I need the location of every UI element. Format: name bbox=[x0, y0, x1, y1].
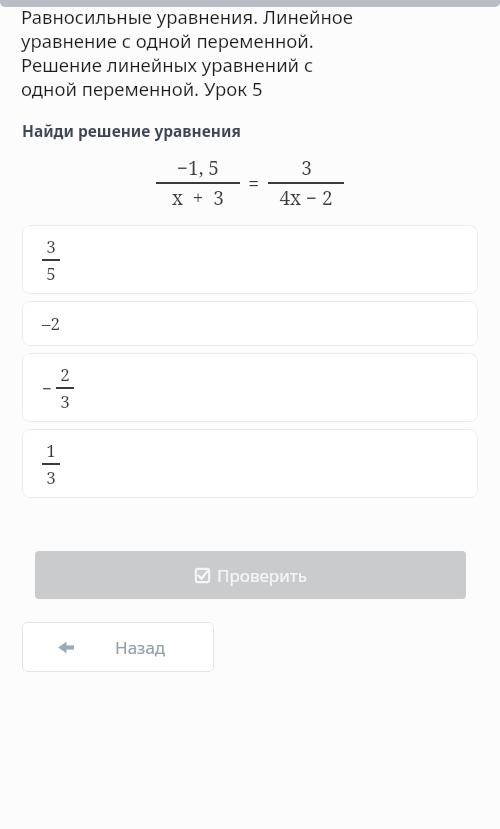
staticText: 3 bbox=[46, 466, 56, 489]
button[interactable]: Назад bbox=[22, 622, 214, 672]
staticText: 5 bbox=[46, 262, 56, 285]
staticText: = bbox=[248, 170, 260, 197]
other: Назад bbox=[56, 637, 77, 658]
staticText: x + 3 bbox=[172, 185, 224, 211]
button[interactable]: –2 bbox=[22, 301, 478, 346]
button[interactable]: Проверить bbox=[35, 551, 466, 599]
button[interactable]: 3 bbox=[22, 225, 478, 294]
button[interactable]: 1 bbox=[22, 429, 478, 498]
staticText: 3 bbox=[60, 390, 70, 413]
staticText: Назад bbox=[115, 636, 166, 659]
staticText: −1, 5 bbox=[177, 155, 219, 181]
staticText: 3 bbox=[301, 155, 312, 181]
button[interactable]: − bbox=[22, 353, 478, 422]
staticText: 4x − 2 bbox=[279, 185, 333, 211]
staticText: Найди решение уравнения bbox=[22, 120, 241, 141]
staticText: Равносильные уравнения. Линейное уравнен… bbox=[21, 4, 353, 101]
staticText: Проверить bbox=[217, 564, 307, 587]
staticText: 2 bbox=[60, 363, 70, 386]
staticText: 3 bbox=[46, 235, 56, 258]
staticText: 1 bbox=[46, 439, 56, 462]
staticText: − bbox=[42, 377, 52, 400]
staticText: –2 bbox=[42, 312, 61, 335]
